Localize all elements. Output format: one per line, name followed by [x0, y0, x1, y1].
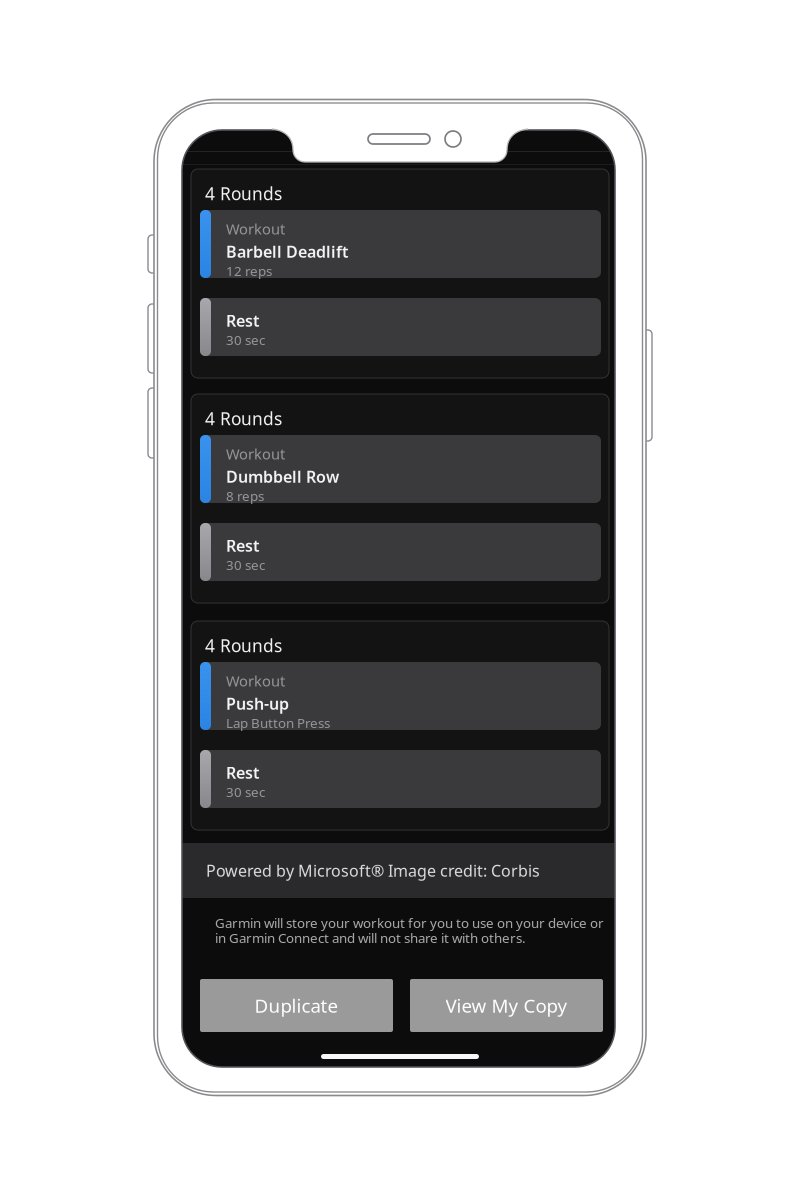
button[interactable]: Duplicate: [200, 979, 393, 1032]
staticText: 8 reps: [226, 487, 264, 505]
staticText: Workout: [226, 671, 285, 690]
staticText: Workout: [226, 444, 285, 463]
button[interactable]: Rest: [200, 750, 601, 808]
button[interactable]: View My Copy: [410, 979, 603, 1032]
staticText: Barbell Deadlift: [226, 241, 348, 262]
staticText: Powered by Microsoft® Image credit: Corb…: [206, 860, 540, 881]
staticText: in Garmin Connect and will not share it …: [215, 929, 526, 947]
staticText: 12 reps: [226, 262, 272, 280]
staticText: Rest: [226, 310, 259, 331]
staticText: Dumbbell Row: [226, 466, 339, 487]
staticText: Rest: [226, 535, 259, 556]
staticText: 30 sec: [226, 331, 265, 349]
staticText: Rest: [226, 762, 259, 783]
staticText: Lap Button Press: [226, 714, 330, 732]
staticText: 4 Rounds: [205, 407, 282, 430]
button[interactable]: Rest: [200, 523, 601, 581]
staticText: Duplicate: [254, 993, 338, 1018]
staticText: Workout: [226, 219, 285, 238]
staticText: Push-up: [226, 693, 289, 714]
staticText: 30 sec: [226, 556, 265, 574]
staticText: 30 sec: [226, 783, 265, 801]
button[interactable]: Workout: [200, 662, 601, 730]
button[interactable]: Workout: [200, 210, 601, 278]
staticText: View My Copy: [445, 993, 567, 1018]
button[interactable]: Workout: [200, 435, 601, 503]
staticText: 4 Rounds: [205, 634, 282, 657]
staticText: 4 Rounds: [205, 182, 282, 205]
button[interactable]: Rest: [200, 298, 601, 356]
staticText: Garmin will store your workout for you t…: [215, 914, 604, 932]
